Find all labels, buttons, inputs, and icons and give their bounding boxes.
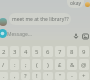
staticText: - xyxy=(71,72,73,80)
button[interactable]: Send image xyxy=(81,32,89,40)
staticText: : xyxy=(14,61,16,69)
staticText: . xyxy=(3,72,5,80)
button[interactable]: 8 xyxy=(67,46,77,57)
staticText: 5 xyxy=(35,48,39,56)
button[interactable]: ! xyxy=(32,72,41,80)
button[interactable]: / xyxy=(0,59,8,70)
button[interactable]: 9 xyxy=(79,46,89,57)
staticText: £ xyxy=(58,61,62,69)
button[interactable]: meet me at the library?? xyxy=(9,13,71,25)
staticText: @ xyxy=(81,61,87,69)
staticText: / xyxy=(2,61,5,69)
staticText: ! xyxy=(36,72,38,80)
staticText: meet me at the library?? xyxy=(12,16,69,23)
staticText: 2 xyxy=(2,48,6,56)
button[interactable]: , xyxy=(10,72,19,80)
button[interactable]: ? xyxy=(21,72,30,80)
staticText: 7 xyxy=(58,48,62,56)
staticText: ? xyxy=(24,72,27,80)
button[interactable]: " xyxy=(55,72,65,80)
button[interactable]: & xyxy=(67,59,77,70)
button[interactable]: : xyxy=(10,59,19,70)
button[interactable]: 3 xyxy=(10,46,19,57)
staticText: " xyxy=(59,72,62,80)
button[interactable]: ( xyxy=(32,59,41,70)
button[interactable]: . xyxy=(0,72,8,80)
button[interactable]: ; xyxy=(21,59,30,70)
button[interactable]: ' xyxy=(43,72,53,80)
button[interactable]: Voice message xyxy=(72,32,79,39)
button[interactable]: okay xyxy=(67,0,84,8)
button[interactable]: 5 xyxy=(32,46,41,57)
staticText: ( xyxy=(36,61,38,69)
staticText: Message... xyxy=(7,31,32,38)
button[interactable]: 2 xyxy=(0,46,8,57)
staticText: ' xyxy=(47,72,49,80)
staticText: 6 xyxy=(46,48,50,56)
staticText: 8 xyxy=(70,48,74,56)
button[interactable]: Open camera xyxy=(0,29,7,38)
button[interactable]: @ xyxy=(79,59,89,70)
button[interactable]: 6 xyxy=(43,46,53,57)
staticText: & xyxy=(70,61,75,69)
staticText: 3 xyxy=(13,48,17,56)
staticText: ) xyxy=(47,61,49,69)
button[interactable]: + xyxy=(79,72,89,80)
staticText: okay xyxy=(70,0,82,7)
button[interactable]: ) xyxy=(43,59,53,70)
staticText: 4 xyxy=(24,48,28,56)
staticText: ; xyxy=(25,61,27,69)
button[interactable]: 7 xyxy=(55,46,65,57)
staticText: 9 xyxy=(82,48,86,56)
staticText: + xyxy=(82,72,86,80)
staticText: , xyxy=(14,72,16,80)
button[interactable]: - xyxy=(67,72,77,80)
button[interactable]: £ xyxy=(55,59,65,70)
button[interactable]: 4 xyxy=(21,46,30,57)
